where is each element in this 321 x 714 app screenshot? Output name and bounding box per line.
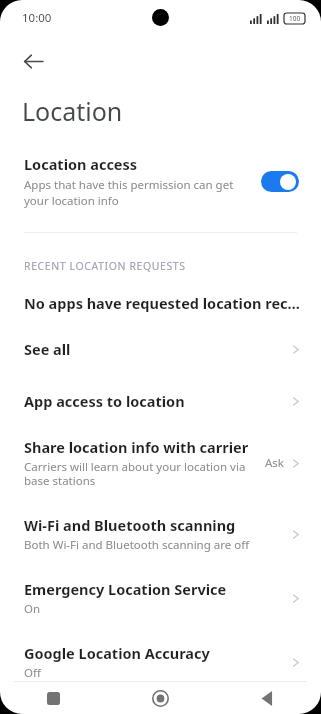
staticText: Off — [24, 665, 41, 681]
staticText: Ask — [265, 455, 284, 471]
staticText: No apps have requested location recent.. — [24, 293, 301, 313]
button[interactable]: See all — [0, 339, 321, 359]
staticText: Google Location Accuracy — [24, 643, 210, 663]
staticText: On — [24, 601, 41, 617]
staticText: Location — [22, 94, 123, 128]
button[interactable]: Back — [12, 40, 54, 82]
button[interactable]: Home — [107, 682, 214, 714]
staticText: 10:00 — [22, 10, 52, 26]
button[interactable]: Back — [214, 682, 321, 714]
button[interactable]: Wi-Fi and Bluetooth scanning — [0, 515, 321, 553]
button[interactable]: Share location info with carrier — [0, 437, 321, 489]
staticText: RECENT LOCATION REQUESTS — [24, 259, 186, 273]
staticText: Emergency Location Service — [24, 579, 227, 599]
button[interactable]: Recents — [0, 682, 107, 714]
staticText: Share location info with carrier — [24, 437, 249, 457]
staticText: Both Wi-Fi and Bluetooth scanning are of… — [24, 537, 250, 553]
button[interactable]: Google Location Accuracy — [0, 643, 321, 681]
staticText: Carriers will learn about your location … — [24, 459, 261, 489]
staticText: Apps that have this permission can get y… — [24, 177, 251, 208]
button[interactable]: Location access toggle — [261, 171, 299, 192]
staticText: Location access — [24, 154, 138, 174]
staticText: See all — [24, 339, 71, 359]
staticText: Wi-Fi and Bluetooth scanning — [24, 515, 236, 535]
button[interactable]: Location access — [0, 152, 321, 218]
button[interactable]: Emergency Location Service — [0, 579, 321, 617]
staticText: 100 — [289, 14, 301, 23]
button[interactable]: App access to location — [0, 391, 321, 411]
staticText: App access to location — [24, 391, 185, 411]
